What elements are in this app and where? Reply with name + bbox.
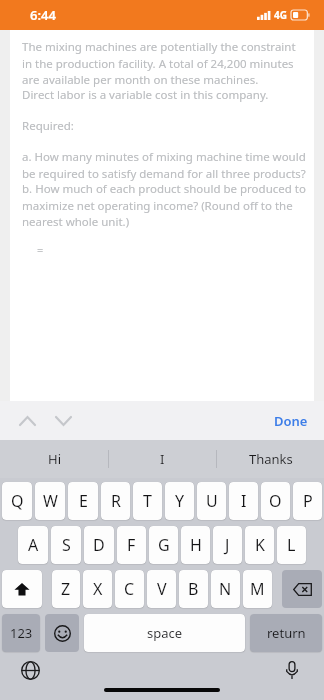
staticText: J: [225, 534, 230, 556]
staticText: 6:44: [30, 6, 56, 24]
button[interactable]: return: [250, 614, 322, 652]
staticText: 123: [10, 624, 33, 642]
button[interactable]: G: [149, 526, 178, 564]
staticText: W: [43, 490, 58, 512]
staticText: R: [111, 490, 121, 512]
button[interactable]: Hi: [0, 440, 108, 478]
staticText: F: [127, 534, 136, 556]
button[interactable]: A: [18, 526, 48, 564]
button[interactable]: M: [243, 570, 272, 608]
button[interactable]: Backspace: [282, 570, 322, 608]
staticText: Q: [11, 490, 24, 512]
staticText: I: [160, 450, 165, 468]
button[interactable]: E: [68, 482, 98, 520]
staticText: N: [219, 578, 232, 600]
staticText: X: [93, 578, 103, 600]
button[interactable]: Q: [2, 482, 32, 520]
staticText: Y: [175, 490, 185, 512]
staticText: H: [190, 534, 202, 556]
button[interactable]: C: [115, 570, 144, 608]
staticText: K: [255, 534, 265, 556]
button[interactable]: 123: [2, 614, 40, 652]
staticText: Z: [61, 578, 71, 600]
button[interactable]: space: [84, 614, 245, 652]
button[interactable]: U: [197, 482, 226, 520]
button[interactable]: P: [293, 482, 322, 520]
button[interactable]: D: [84, 526, 114, 564]
button[interactable]: Previous field: [12, 406, 42, 436]
staticText: b. How much of each product should be pr…: [22, 181, 306, 229]
button[interactable]: J: [213, 526, 242, 564]
button[interactable]: R: [101, 482, 130, 520]
staticText: M: [250, 578, 265, 600]
staticText: C: [124, 578, 135, 600]
button[interactable]: L: [277, 526, 306, 564]
button[interactable]: Done: [258, 403, 324, 439]
button[interactable]: W: [35, 482, 65, 520]
staticText: Hi: [48, 450, 61, 468]
staticText: P: [303, 490, 313, 512]
staticText: B: [188, 578, 199, 600]
staticText: space: [147, 624, 183, 642]
staticText: The mixing machines are potentially the …: [22, 39, 306, 87]
staticText: I: [241, 490, 247, 512]
staticText: L: [287, 534, 296, 556]
button[interactable]: F: [117, 526, 146, 564]
staticText: Thanks: [249, 450, 293, 468]
button[interactable]: N: [211, 570, 240, 608]
button[interactable]: Change keyboard language: [16, 656, 44, 684]
staticText: A: [28, 534, 39, 556]
staticText: T: [143, 490, 152, 512]
button[interactable]: I: [109, 440, 216, 478]
staticText: V: [157, 578, 167, 600]
staticText: return: [267, 624, 306, 642]
button[interactable]: Dictate: [278, 656, 306, 684]
staticText: D: [93, 534, 105, 556]
button[interactable]: S: [51, 526, 81, 564]
staticText: E: [79, 490, 88, 512]
staticText: U: [206, 490, 218, 512]
button[interactable]: H: [181, 526, 210, 564]
button[interactable]: I: [229, 482, 258, 520]
button[interactable]: Shift: [2, 570, 42, 608]
button[interactable]: Next field: [48, 406, 78, 436]
staticText: =: [37, 242, 44, 257]
staticText: G: [158, 534, 170, 556]
staticText: 4G: [274, 8, 287, 22]
staticText: Direct labor is a variable cost in this …: [22, 87, 269, 103]
button[interactable]: B: [179, 570, 208, 608]
staticText: Done: [274, 412, 308, 430]
button[interactable]: K: [245, 526, 274, 564]
staticText: O: [269, 490, 282, 512]
button[interactable]: Z: [52, 570, 80, 608]
staticText: Required:: [22, 118, 74, 134]
button[interactable]: Thanks: [217, 440, 324, 478]
staticText: a. How many minutes of mixing machine ti…: [22, 149, 306, 181]
button[interactable]: Emoji: [45, 614, 79, 652]
button[interactable]: T: [133, 482, 162, 520]
button[interactable]: V: [147, 570, 176, 608]
button[interactable]: O: [261, 482, 290, 520]
button[interactable]: X: [83, 570, 112, 608]
button[interactable]: Y: [165, 482, 194, 520]
staticText: S: [62, 534, 71, 556]
